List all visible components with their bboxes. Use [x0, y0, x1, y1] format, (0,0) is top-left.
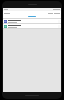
- button[interactable]: [28, 16, 36, 17]
- button[interactable]: More options: [3, 19, 61, 23]
- button[interactable]: More options: [3, 24, 61, 28]
